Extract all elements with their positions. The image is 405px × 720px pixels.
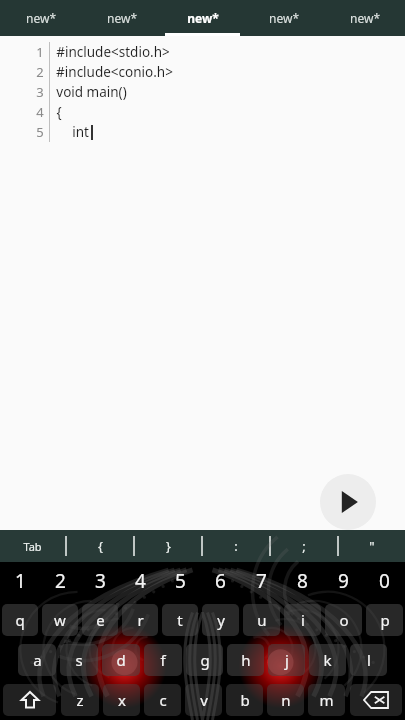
button[interactable]: g [186, 644, 223, 676]
staticText: 3 [95, 568, 106, 594]
button[interactable]: d [102, 644, 140, 676]
staticText: 5 [175, 568, 186, 594]
staticText: 1 [15, 568, 26, 594]
button[interactable]: 2 [40, 562, 80, 600]
button[interactable]: i [284, 604, 321, 636]
button[interactable]: new* [0, 0, 81, 36]
button[interactable]: v [185, 684, 222, 716]
button[interactable]: b [226, 684, 263, 716]
staticText: n [281, 690, 291, 710]
button[interactable]: k [309, 644, 346, 676]
button[interactable]: Run [320, 474, 376, 530]
button[interactable]: x [103, 684, 140, 716]
button[interactable]: : [203, 530, 269, 562]
staticText: y [217, 610, 225, 630]
staticText: e [96, 610, 105, 630]
staticText: 9 [338, 568, 349, 594]
button[interactable]: f [144, 644, 182, 676]
staticText: x [118, 690, 126, 710]
button[interactable]: m [308, 684, 345, 716]
staticText: q [15, 610, 25, 630]
staticText: 3 [36, 83, 44, 101]
button[interactable]: Tab [0, 530, 65, 562]
staticText: new* [350, 10, 380, 26]
staticText: d [116, 650, 126, 670]
button[interactable]: Shift [3, 684, 56, 716]
button[interactable]: r [122, 604, 158, 636]
button[interactable]: u [243, 604, 280, 636]
staticText: new* [26, 10, 56, 26]
button[interactable]: c [144, 684, 181, 716]
staticText: 0 [379, 568, 390, 594]
button[interactable]: n [267, 684, 304, 716]
button[interactable]: new* [243, 0, 324, 36]
button[interactable]: q [2, 604, 38, 636]
button[interactable]: Backspace [350, 684, 402, 716]
staticText: p [380, 610, 390, 630]
staticText: o [339, 610, 349, 630]
button[interactable]: w [42, 604, 78, 636]
staticText: void main() [56, 83, 127, 101]
staticText: s [75, 650, 83, 670]
staticText: { [56, 103, 62, 121]
staticText: l [367, 650, 371, 670]
button[interactable]: h [227, 644, 264, 676]
staticText: 4 [135, 568, 146, 594]
button[interactable]: 9 [323, 562, 364, 600]
button[interactable]: 5 [160, 562, 200, 600]
button[interactable]: new* [162, 0, 243, 36]
button[interactable]: l [350, 644, 387, 676]
button[interactable]: 6 [200, 562, 241, 600]
staticText: k [323, 650, 332, 670]
staticText: c [159, 690, 167, 710]
button[interactable]: new* [324, 0, 405, 36]
button[interactable]: e [82, 604, 118, 636]
staticText: 2 [55, 568, 66, 594]
button[interactable]: " [339, 530, 405, 562]
staticText: 4 [36, 103, 44, 121]
staticText: w [54, 610, 66, 630]
button[interactable]: 4 [120, 562, 160, 600]
staticText: h [241, 650, 251, 670]
button[interactable]: y [202, 604, 239, 636]
button[interactable]: o [325, 604, 362, 636]
button[interactable]: t [162, 604, 198, 636]
staticText: z [76, 690, 84, 710]
staticText: 6 [215, 568, 226, 594]
staticText: { [98, 537, 103, 555]
staticText: int [56, 123, 91, 141]
button[interactable]: ; [271, 530, 337, 562]
button[interactable]: j [268, 644, 305, 676]
staticText: #include<conio.h> [56, 63, 173, 81]
staticText: " [369, 537, 375, 555]
staticText: 1 [36, 43, 44, 61]
button[interactable]: 8 [282, 562, 323, 600]
staticText: 7 [256, 568, 267, 594]
staticText: Tab [23, 539, 42, 554]
button[interactable]: { [67, 530, 133, 562]
staticText: i [301, 610, 305, 630]
staticText: 5 [36, 123, 44, 141]
staticText: r [137, 610, 144, 630]
button[interactable]: a [18, 644, 56, 676]
button[interactable]: 3 [80, 562, 120, 600]
button[interactable]: s [60, 644, 98, 676]
button[interactable]: 1 [0, 562, 40, 600]
staticText: u [257, 610, 267, 630]
staticText: new* [269, 10, 299, 26]
staticText: t [177, 610, 183, 630]
staticText: new* [187, 10, 219, 26]
staticText: b [240, 690, 250, 710]
staticText: : [234, 537, 238, 555]
staticText: 2 [36, 63, 44, 81]
button[interactable]: p [366, 604, 403, 636]
button[interactable]: 7 [241, 562, 282, 600]
staticText: 8 [297, 568, 308, 594]
staticText: j [285, 650, 289, 670]
button[interactable]: z [61, 684, 99, 716]
button[interactable]: } [135, 530, 201, 562]
button[interactable]: new* [81, 0, 162, 36]
staticText: g [200, 650, 210, 670]
button[interactable]: 0 [364, 562, 405, 600]
staticText: a [33, 650, 42, 670]
